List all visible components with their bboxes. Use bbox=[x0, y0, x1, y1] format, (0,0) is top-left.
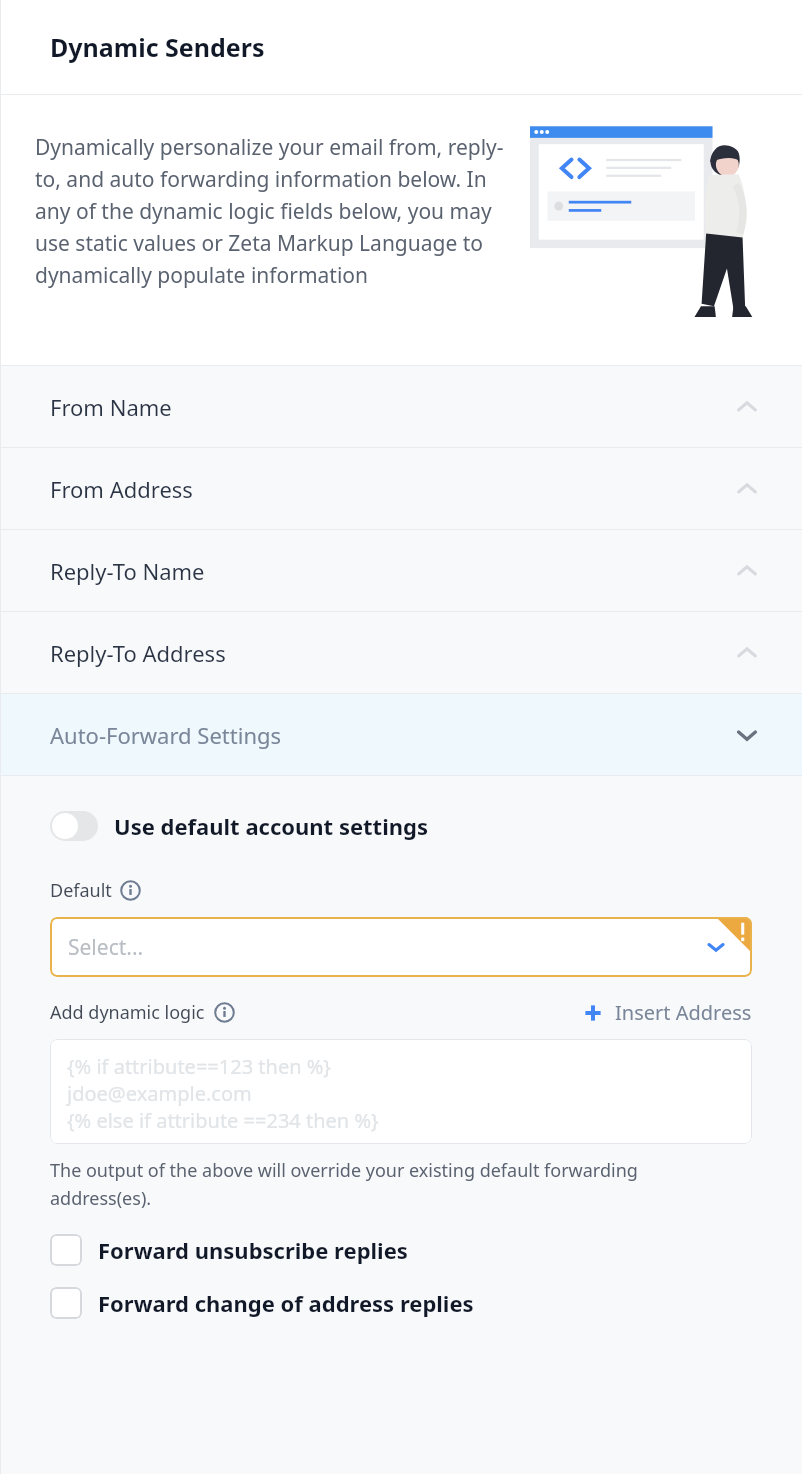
staticText: Select... bbox=[68, 933, 144, 962]
button[interactable]: Forward unsubscribe replies bbox=[50, 1234, 802, 1266]
staticText: Reply-To Name bbox=[50, 556, 205, 586]
button[interactable]: From Name bbox=[0, 366, 802, 447]
other: Information bbox=[214, 1002, 235, 1023]
staticText: {% else if attribute ==234 then %} bbox=[67, 1107, 379, 1134]
staticText: jdoe@example.com bbox=[67, 1080, 252, 1107]
button[interactable]: Reply-To Address bbox=[0, 612, 802, 693]
staticText: Add dynamic logic bbox=[50, 1000, 205, 1025]
staticText: Auto-Forward Settings bbox=[50, 720, 282, 750]
other: Information bbox=[120, 880, 141, 901]
button[interactable]: Select... bbox=[50, 917, 752, 977]
staticText: Forward unsubscribe replies bbox=[98, 1235, 408, 1265]
button[interactable]: {% if attribute==123 then %} bbox=[50, 1039, 752, 1144]
staticText: Reply-To Address bbox=[50, 638, 226, 668]
staticText: Use default account settings bbox=[114, 811, 428, 841]
staticText: Dynamic Senders bbox=[50, 30, 265, 64]
staticText: The output of the above will override yo… bbox=[50, 1158, 690, 1210]
button[interactable]: Forward change of address replies bbox=[50, 1287, 802, 1319]
staticText: {% if attribute==123 then %} bbox=[67, 1053, 331, 1080]
staticText: From Name bbox=[50, 392, 172, 422]
button[interactable]: Auto-Forward Settings bbox=[0, 694, 802, 775]
staticText: From Address bbox=[50, 474, 193, 504]
button[interactable]: Insert Address bbox=[583, 999, 752, 1026]
staticText: Default bbox=[50, 878, 112, 903]
button[interactable]: Reply-To Name bbox=[0, 530, 802, 611]
button[interactable]: From Address bbox=[0, 448, 802, 529]
staticText: Forward change of address replies bbox=[98, 1288, 474, 1318]
button[interactable]: Use default account settings bbox=[50, 811, 802, 841]
staticText: Insert Address bbox=[615, 999, 752, 1026]
staticText: Dynamically personalize your email from,… bbox=[35, 133, 505, 289]
